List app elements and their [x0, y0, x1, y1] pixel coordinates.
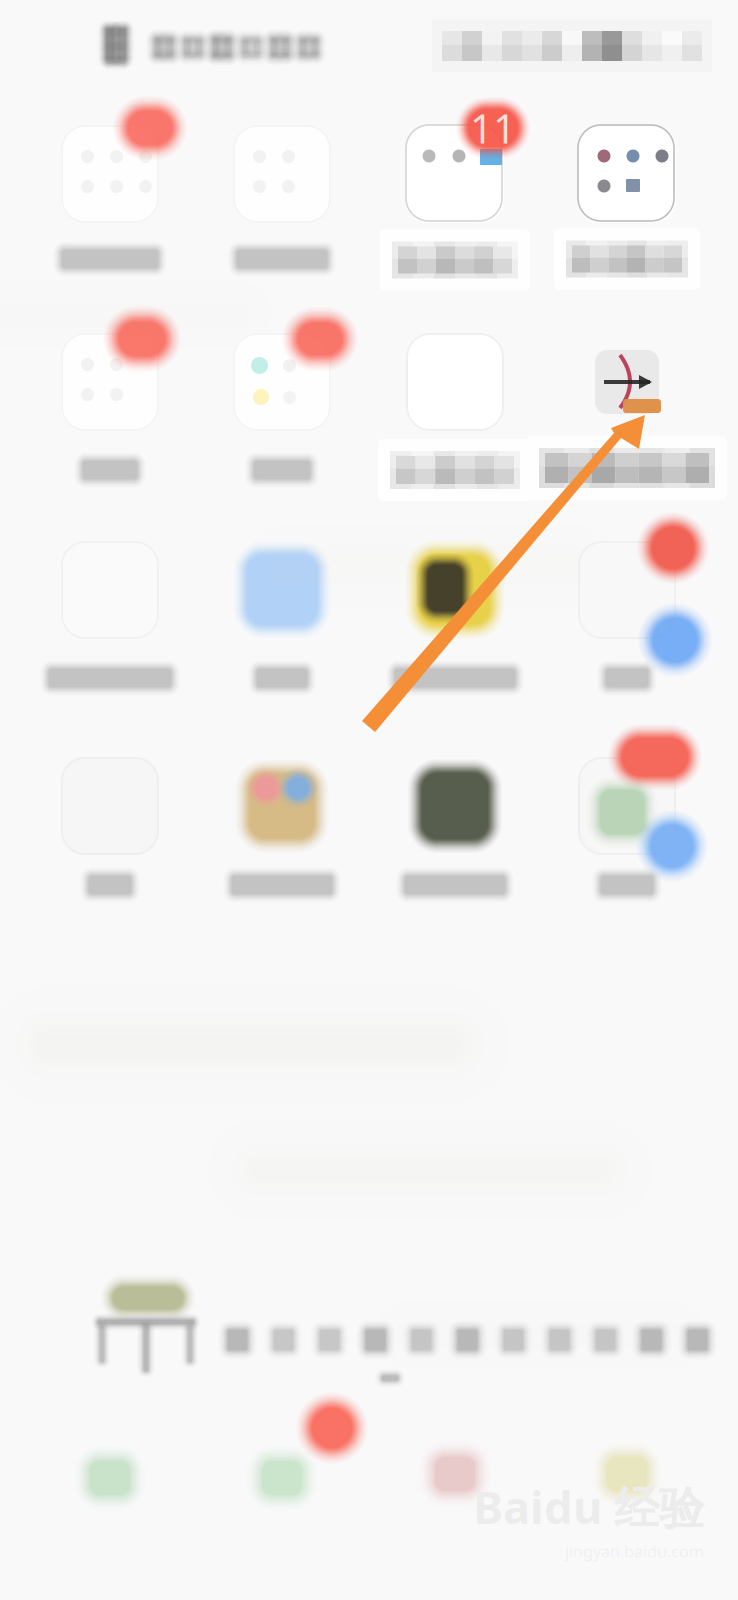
button[interactable] [0, 0, 738, 1600]
button[interactable] [0, 0, 738, 1600]
button[interactable] [0, 0, 738, 1600]
button[interactable] [0, 0, 738, 1600]
button[interactable]: Notes [0, 0, 738, 1600]
button[interactable] [0, 0, 738, 1600]
button[interactable] [0, 0, 738, 1600]
button[interactable] [0, 0, 738, 1600]
staticText: 11 [470, 101, 516, 154]
staticText: Baidu 经验 [473, 1476, 704, 1537]
button[interactable] [0, 0, 738, 1600]
button[interactable]: Music [0, 0, 738, 1600]
button[interactable] [0, 0, 738, 1600]
button[interactable] [0, 0, 738, 1600]
button[interactable] [0, 0, 738, 1600]
button[interactable] [0, 0, 738, 1600]
button[interactable]: Messages [0, 0, 738, 1600]
button[interactable] [0, 0, 738, 1600]
button[interactable] [0, 0, 738, 1600]
button[interactable] [0, 0, 738, 1600]
staticText: jingyan.baidu.com [565, 1541, 704, 1562]
button[interactable] [0, 0, 738, 1600]
button[interactable]: Phone [0, 0, 738, 1600]
